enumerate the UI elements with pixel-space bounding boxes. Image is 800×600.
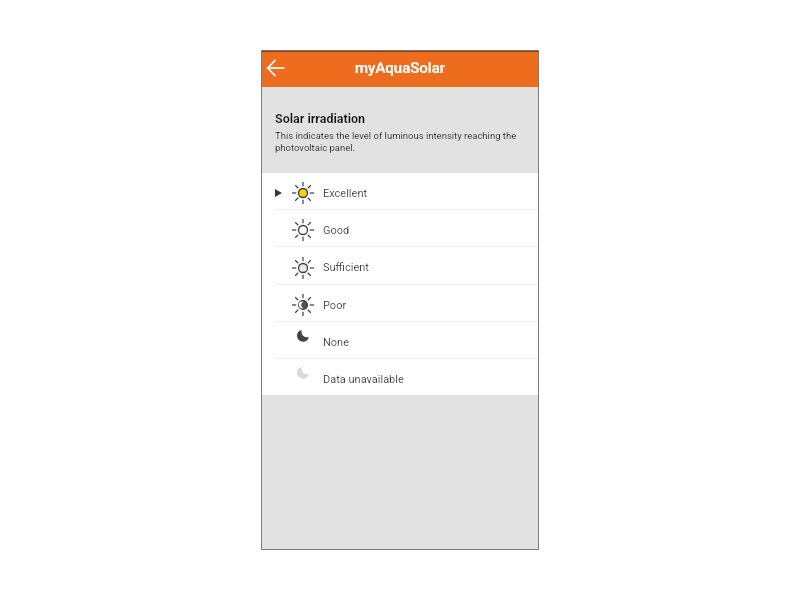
staticText: Good bbox=[323, 224, 350, 237]
button[interactable]: Poor bbox=[262, 285, 538, 321]
staticText: Excellent bbox=[323, 187, 368, 200]
staticText: Sufficient bbox=[323, 261, 369, 274]
button[interactable]: None bbox=[262, 322, 538, 358]
staticText: Data unavailable bbox=[323, 373, 404, 386]
button[interactable]: Data unavailable bbox=[262, 359, 538, 395]
button[interactable]: Sufficient bbox=[262, 247, 538, 284]
staticText: Solar irradiation bbox=[275, 111, 366, 126]
staticText: myAquaSolar bbox=[355, 59, 446, 77]
staticText: Poor bbox=[323, 299, 347, 312]
staticText: None bbox=[323, 336, 350, 349]
staticText: This indicates the level of luminous int… bbox=[275, 130, 524, 153]
button[interactable]: Excellent bbox=[262, 173, 538, 209]
button[interactable]: Good bbox=[262, 210, 538, 246]
button[interactable]: Back bbox=[262, 55, 291, 84]
